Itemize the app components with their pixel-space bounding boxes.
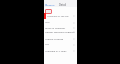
staticText: Music in Spotlight [45, 26, 66, 29]
button[interactable]: Info [44, 42, 77, 47]
button[interactable]: Automatic or Off-line [47, 15, 69, 18]
staticText: Detail [59, 3, 67, 6]
staticText: Automatic or Off-line [47, 15, 69, 18]
staticText: Info [45, 43, 49, 46]
button[interactable]: Cancel [44, 3, 55, 6]
staticText: Available in 4 Titles [45, 49, 67, 52]
button[interactable]: Avenue Creative [44, 36, 77, 41]
button[interactable]: Available in 4 Titles [44, 48, 77, 53]
button[interactable]: Item [44, 20, 77, 25]
staticText: Avenue Creative [45, 37, 64, 40]
staticText: Item [45, 21, 50, 24]
staticText: Cancel [47, 3, 55, 6]
staticText: Handel Signature Legends [45, 30, 75, 33]
button[interactable]: Music in Spotlight [44, 25, 77, 30]
button[interactable]: Handel Signature Legends [44, 29, 77, 34]
